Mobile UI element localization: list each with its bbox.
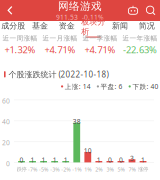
staticText: 新闻	[112, 21, 128, 31]
staticText: -5%	[39, 166, 48, 173]
staticText: 911.53 -0.11%	[56, 13, 104, 21]
staticText: 1	[30, 155, 34, 164]
staticText: 1	[64, 155, 68, 164]
staticText: 0	[6, 159, 10, 168]
staticText: 网络游戏	[58, 0, 102, 13]
button[interactable]: 基金	[27, 21, 53, 35]
staticText: 60	[2, 96, 10, 105]
staticText: +1.32%	[4, 43, 35, 56]
button[interactable]: 新闻	[107, 21, 133, 35]
staticText: 平盘: 6	[101, 82, 123, 91]
staticText: 近一季涨幅	[82, 34, 117, 42]
staticText: 0	[119, 155, 123, 164]
staticText: -1%	[72, 166, 81, 173]
staticText: 个股涨跌统计 (2022-10-18)	[9, 69, 109, 80]
staticText: -3%	[50, 166, 59, 173]
button[interactable]: 板块分析	[80, 21, 107, 35]
staticText: 1	[141, 155, 145, 164]
staticText: 成分股	[1, 21, 25, 31]
button[interactable]: 资金	[53, 21, 80, 35]
staticText: 5%	[117, 166, 124, 173]
staticText: 近一周涨幅	[2, 34, 37, 42]
staticText: 1	[53, 155, 57, 164]
staticText: 0	[108, 155, 112, 164]
staticText: 近一月涨幅	[42, 34, 77, 42]
staticText: 基金	[32, 21, 48, 31]
staticText: 1	[97, 155, 101, 164]
staticText: 20	[2, 138, 10, 147]
staticText: 上涨: 14	[65, 82, 91, 91]
staticText: 38	[73, 117, 81, 126]
staticText: -7%	[28, 166, 37, 173]
staticText: +4.71%	[44, 43, 75, 56]
button[interactable]: 成分股	[0, 21, 27, 35]
staticText: 简况	[139, 21, 155, 31]
staticText: -2%	[61, 166, 70, 173]
staticText: 下跌: 40	[132, 82, 158, 91]
button[interactable]: Back	[0, 0, 20, 21]
button[interactable]: Search	[142, 0, 160, 21]
staticText: 1%	[84, 166, 91, 173]
staticText: 3	[130, 154, 134, 163]
staticText: 3%	[106, 166, 113, 173]
button[interactable]: 简况	[133, 21, 160, 35]
staticText: 资金	[59, 21, 75, 31]
staticText: 7%	[128, 166, 135, 173]
staticText: -22.63%	[123, 43, 157, 56]
staticText: 跌停	[16, 166, 26, 173]
staticText: 10	[84, 146, 92, 155]
staticText: 1	[42, 155, 46, 164]
staticText: 近一年涨幅	[122, 34, 157, 42]
staticText: 2%	[95, 166, 102, 173]
staticText: 40	[2, 117, 10, 126]
staticText: 0	[19, 155, 23, 164]
staticText: 板块分析	[81, 17, 105, 37]
staticText: +4.71%	[84, 43, 115, 56]
button[interactable]: Assistant	[124, 0, 142, 21]
staticText: 涨停	[138, 166, 148, 173]
